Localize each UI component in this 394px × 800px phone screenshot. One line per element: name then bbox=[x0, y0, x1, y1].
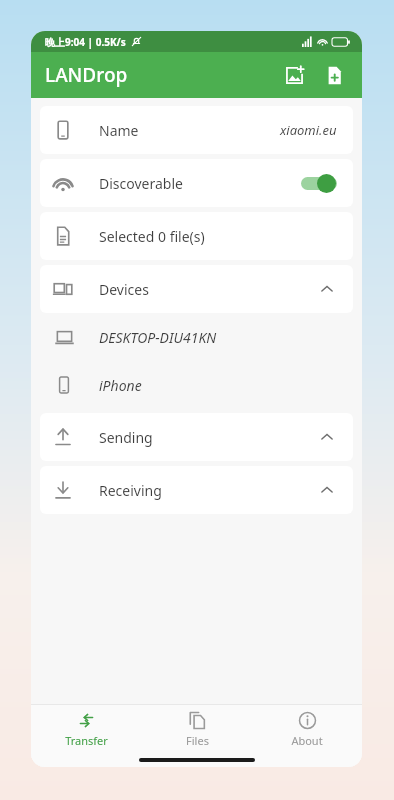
staticText: Selected 0 file(s) bbox=[99, 227, 205, 246]
staticText: Name bbox=[99, 121, 139, 140]
button[interactable]: Receiving bbox=[40, 466, 353, 514]
button[interactable]: Discoverable bbox=[40, 159, 353, 207]
button[interactable]: Files bbox=[142, 707, 252, 752]
button[interactable]: Transfer bbox=[31, 707, 142, 752]
button[interactable]: Sending bbox=[40, 413, 353, 461]
button[interactable]: Add file bbox=[314, 55, 354, 95]
staticText: Files bbox=[186, 733, 209, 748]
staticText: Devices bbox=[99, 280, 149, 299]
staticText: 晚上9:04 | 0.5K/s bbox=[45, 35, 126, 49]
button[interactable]: DESKTOP-DIU41KN bbox=[40, 313, 353, 361]
staticText: Sending bbox=[99, 428, 153, 447]
button[interactable]: Discoverable toggle bbox=[301, 172, 337, 194]
button[interactable]: About bbox=[252, 707, 362, 752]
button[interactable]: Selected 0 file(s) bbox=[40, 212, 353, 260]
button[interactable]: Devices bbox=[40, 265, 353, 313]
staticText: Discoverable bbox=[99, 174, 183, 193]
button[interactable]: iPhone bbox=[40, 361, 353, 409]
staticText: DESKTOP-DIU41KN bbox=[99, 328, 217, 347]
staticText: LANDrop bbox=[45, 62, 128, 88]
button[interactable]: Name bbox=[40, 106, 353, 154]
staticText: About bbox=[291, 733, 323, 748]
staticText: Transfer bbox=[65, 733, 108, 748]
button[interactable]: Add image bbox=[274, 55, 314, 95]
staticText: xiaomi.eu bbox=[280, 121, 337, 139]
staticText: iPhone bbox=[99, 376, 142, 395]
staticText: Receiving bbox=[99, 481, 162, 500]
